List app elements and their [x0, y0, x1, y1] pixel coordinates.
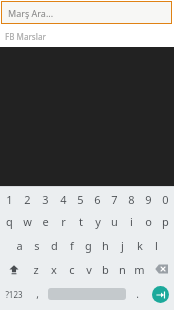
button[interactable]: h — [97, 233, 114, 257]
staticText: u — [111, 214, 118, 229]
button[interactable]: 3 — [36, 190, 54, 209]
staticText: m — [134, 262, 145, 277]
staticText: v — [86, 262, 92, 277]
staticText: y — [95, 214, 101, 229]
staticText: 3 — [42, 192, 49, 207]
staticText: r — [61, 214, 66, 229]
staticText: k — [137, 238, 143, 253]
button[interactable]: o — [140, 209, 157, 233]
button[interactable]: n — [114, 257, 131, 281]
staticText: 6 — [94, 192, 101, 207]
button[interactable]: y — [89, 209, 106, 233]
button[interactable]: m — [131, 257, 148, 281]
staticText: 2 — [24, 192, 31, 207]
staticText: , — [36, 287, 39, 301]
staticText: w — [23, 214, 32, 229]
button[interactable]: 0 — [157, 190, 174, 209]
staticText: p — [162, 214, 169, 229]
button[interactable]: l — [148, 233, 165, 257]
button[interactable]: x — [45, 257, 63, 281]
staticText: ?123 — [5, 289, 23, 300]
staticText: . — [136, 287, 139, 301]
button[interactable]: 8 — [123, 190, 140, 209]
button[interactable]: d — [46, 233, 63, 257]
button[interactable]: e — [36, 209, 54, 233]
staticText: 0 — [162, 192, 169, 207]
button[interactable]: c — [63, 257, 80, 281]
staticText: FB Marslar — [5, 31, 46, 42]
staticText: Marş Ara... — [8, 7, 54, 19]
button[interactable]: z — [27, 257, 45, 281]
button[interactable]: w — [18, 209, 36, 233]
button[interactable]: f — [63, 233, 80, 257]
staticText: q — [6, 214, 13, 229]
staticText: l — [155, 238, 158, 253]
button[interactable]: t — [72, 209, 89, 233]
staticText: 9 — [145, 192, 152, 207]
button[interactable]: 1 — [0, 190, 18, 209]
staticText: 7 — [111, 192, 118, 207]
button[interactable]: Shift — [0, 257, 27, 281]
staticText: d — [51, 238, 58, 253]
button[interactable]: 5 — [72, 190, 89, 209]
button[interactable]: g — [80, 233, 97, 257]
button[interactable]: b — [97, 257, 114, 281]
staticText: 8 — [128, 192, 135, 207]
button[interactable]: q — [0, 209, 18, 233]
button[interactable]: u — [106, 209, 123, 233]
button[interactable]: Next — [146, 281, 174, 307]
staticText: e — [42, 214, 49, 229]
staticText: f — [70, 238, 74, 253]
staticText: s — [34, 238, 40, 253]
button[interactable]: Marş Ara... — [1, 1, 172, 24]
staticText: z — [33, 262, 39, 277]
staticText: 4 — [60, 192, 67, 207]
button[interactable]: p — [157, 209, 174, 233]
staticText: 1 — [6, 192, 13, 207]
staticText: o — [145, 214, 152, 229]
staticText: g — [85, 238, 92, 253]
button[interactable]: 7 — [106, 190, 123, 209]
staticText: a — [16, 238, 23, 253]
staticText: i — [130, 214, 133, 229]
button[interactable]: , — [28, 281, 46, 307]
staticText: j — [121, 238, 124, 253]
button[interactable]: 6 — [89, 190, 106, 209]
button[interactable]: a — [10, 233, 28, 257]
button[interactable]: Backspace — [148, 257, 174, 281]
button[interactable]: 2 — [18, 190, 36, 209]
staticText: n — [119, 262, 126, 277]
button[interactable]: v — [80, 257, 97, 281]
staticText: 5 — [77, 192, 84, 207]
staticText: c — [69, 262, 75, 277]
button[interactable]: 9 — [140, 190, 157, 209]
button[interactable]: ?123 — [0, 281, 28, 307]
button[interactable]: r — [54, 209, 72, 233]
staticText: t — [79, 214, 83, 229]
staticText: x — [51, 262, 57, 277]
button[interactable]: s — [28, 233, 46, 257]
staticText: b — [102, 262, 109, 277]
button[interactable]: j — [114, 233, 131, 257]
button[interactable]: k — [131, 233, 148, 257]
button[interactable]: 4 — [54, 190, 72, 209]
button[interactable]: i — [123, 209, 140, 233]
button[interactable]: . — [128, 281, 146, 307]
staticText: h — [102, 238, 109, 253]
